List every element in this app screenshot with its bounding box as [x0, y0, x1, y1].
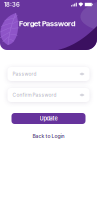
staticText: Forget Password	[19, 19, 75, 28]
staticText: Password	[12, 71, 36, 77]
staticText: Back to Login	[32, 133, 64, 139]
button[interactable]: Update	[11, 113, 85, 124]
button[interactable]: Confirm Password	[7, 88, 89, 102]
staticText: Confirm Password	[12, 92, 56, 98]
staticText: 18:36	[4, 1, 20, 8]
staticText: Update	[39, 115, 57, 122]
button[interactable]: Back to Login	[32, 133, 64, 139]
button[interactable]: Password	[7, 67, 89, 81]
